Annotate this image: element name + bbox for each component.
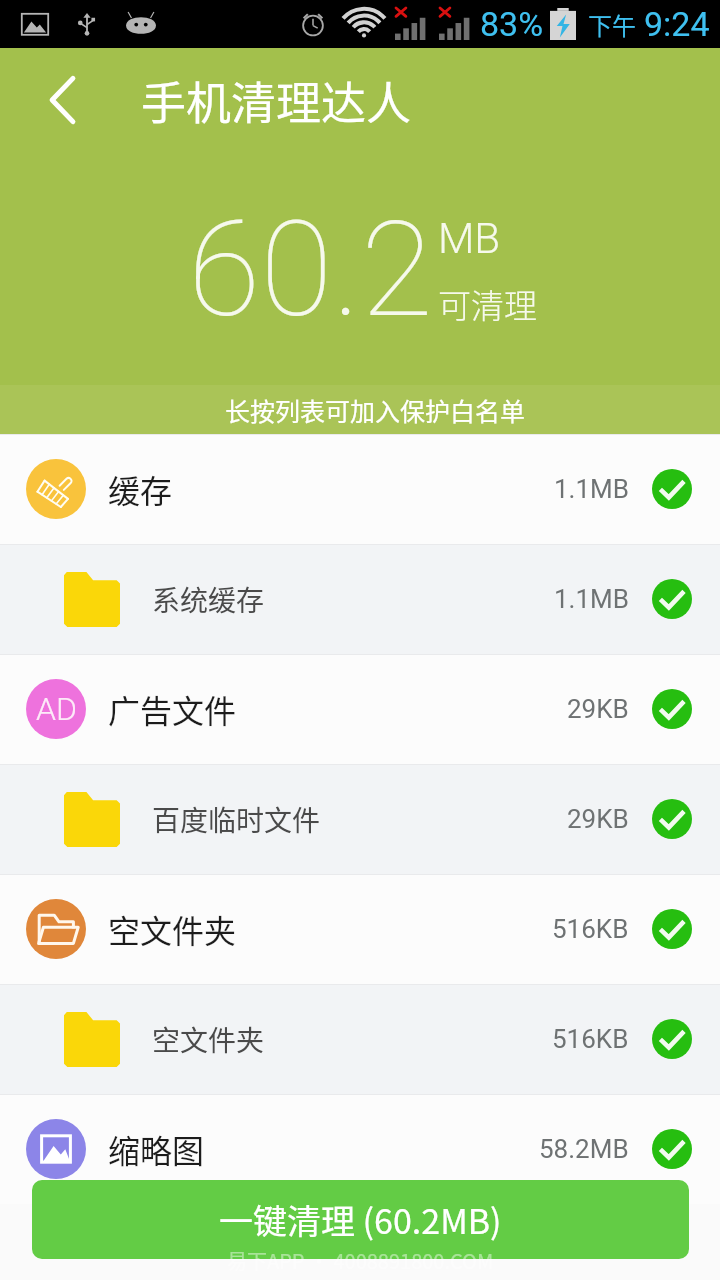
- staticText: 长按列表可加入保护白名单: [225, 392, 526, 428]
- staticText: MB: [438, 214, 501, 263]
- staticText: 百度临时文件: [152, 799, 321, 840]
- staticText: 9:24: [644, 4, 710, 44]
- button[interactable]: 一键清理 (60.2MB): [32, 1180, 689, 1259]
- staticText: 缓存: [108, 466, 173, 512]
- staticText: 60.2: [188, 193, 434, 348]
- button[interactable]: 缩略图: [0, 1094, 720, 1204]
- button[interactable]: 百度临时文件: [0, 764, 720, 874]
- staticText: 易下APP · 4008891800.COM: [227, 1246, 494, 1275]
- staticText: AD: [36, 690, 77, 728]
- staticText: 516KB: [552, 1024, 629, 1054]
- button[interactable]: Selected: [652, 1019, 692, 1059]
- button[interactable]: Selected: [652, 579, 692, 619]
- staticText: 可清理: [438, 280, 537, 328]
- staticText: 一键清理 (60.2MB): [219, 1195, 502, 1244]
- staticText: 58.2MB: [539, 1134, 629, 1164]
- staticText: 1.1MB: [554, 584, 629, 614]
- staticText: 缩略图: [108, 1126, 205, 1172]
- button[interactable]: 空文件夹: [0, 984, 720, 1094]
- button[interactable]: Selected: [652, 1129, 692, 1169]
- button[interactable]: 系统缓存: [0, 544, 720, 654]
- button[interactable]: 空文件夹: [0, 874, 720, 984]
- staticText: 系统缓存: [152, 579, 265, 620]
- button[interactable]: Selected: [652, 909, 692, 949]
- staticText: 83%: [480, 4, 544, 44]
- staticText: 下午: [588, 7, 636, 42]
- staticText: 空文件夹: [108, 906, 237, 952]
- button[interactable]: AD: [0, 654, 720, 764]
- button[interactable]: Selected: [652, 469, 692, 509]
- staticText: 空文件夹: [152, 1019, 265, 1060]
- button[interactable]: 缓存: [0, 434, 720, 544]
- staticText: 516KB: [552, 914, 629, 944]
- staticText: 29KB: [567, 694, 629, 724]
- button[interactable]: Selected: [652, 689, 692, 729]
- staticText: 手机清理达人: [141, 68, 412, 133]
- button[interactable]: Back: [26, 64, 98, 136]
- staticText: 广告文件: [108, 686, 237, 732]
- staticText: 29KB: [567, 804, 629, 834]
- button[interactable]: Selected: [652, 799, 692, 839]
- staticText: 1.1MB: [554, 474, 629, 504]
